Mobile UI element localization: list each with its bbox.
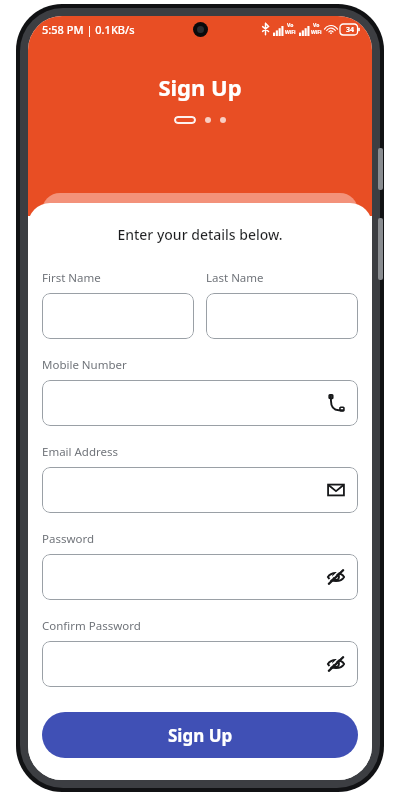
staticText: Vo xyxy=(313,22,320,29)
staticText: WiFi xyxy=(285,29,296,36)
other: Email address xyxy=(327,481,345,499)
button[interactable] xyxy=(206,293,358,339)
button[interactable]: Email address xyxy=(42,467,358,513)
staticText: Sign Up xyxy=(168,724,233,747)
staticText: WiFi xyxy=(311,29,322,36)
button[interactable]: Show password xyxy=(42,641,358,687)
button[interactable]: Sign Up xyxy=(42,712,358,758)
staticText: Vo xyxy=(287,22,294,29)
staticText: Enter your details below. xyxy=(42,225,358,244)
button[interactable] xyxy=(42,293,194,339)
staticText: Password xyxy=(42,531,95,547)
button[interactable]: Show password xyxy=(327,568,345,586)
staticText: Mobile Number xyxy=(42,357,127,373)
button[interactable]: Show password xyxy=(42,554,358,600)
staticText: Sign Up xyxy=(28,72,372,102)
staticText: 5:58 PM | 0.1KB/s xyxy=(42,22,135,37)
staticText: Email Address xyxy=(42,444,119,460)
staticText: First Name xyxy=(42,270,101,286)
staticText: Confirm Password xyxy=(42,618,141,634)
button[interactable]: Show password xyxy=(327,655,345,673)
other: Phone number xyxy=(327,394,345,412)
staticText: Last Name xyxy=(206,270,264,286)
staticText: 34 xyxy=(346,25,355,35)
button[interactable]: Phone number xyxy=(42,380,358,426)
